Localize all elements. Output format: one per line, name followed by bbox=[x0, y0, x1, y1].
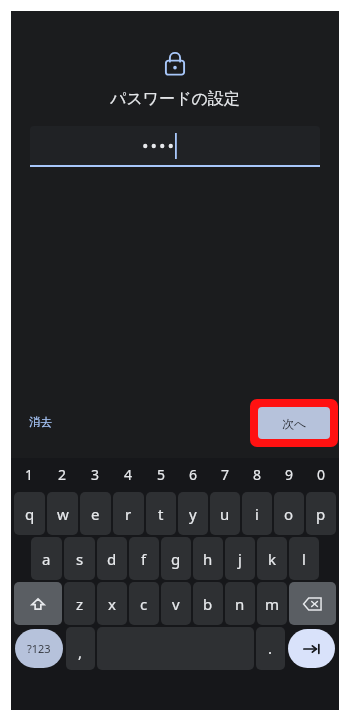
button[interactable]: 消去 bbox=[25, 411, 56, 433]
button[interactable]: 4 bbox=[112, 458, 145, 491]
button[interactable]: t bbox=[146, 492, 176, 535]
button[interactable]: m bbox=[257, 582, 287, 625]
button[interactable]: 8 bbox=[241, 458, 273, 491]
staticText: j bbox=[238, 549, 242, 569]
button[interactable]: Enter bbox=[288, 629, 335, 668]
staticText: w bbox=[57, 504, 69, 524]
button[interactable]: p bbox=[306, 492, 336, 535]
button[interactable]: 7 bbox=[209, 458, 241, 491]
staticText: g bbox=[171, 549, 181, 569]
button[interactable]: e bbox=[80, 492, 111, 535]
staticText: 3 bbox=[91, 465, 100, 484]
staticText: 1 bbox=[25, 465, 34, 484]
staticText: 消去 bbox=[29, 415, 52, 429]
button[interactable]: s bbox=[64, 537, 95, 580]
button[interactable]: 1 bbox=[13, 458, 46, 491]
staticText: z bbox=[76, 594, 84, 614]
staticText: n bbox=[235, 594, 245, 614]
staticText: r bbox=[125, 504, 132, 524]
button[interactable]: j bbox=[225, 537, 255, 580]
staticText: 4 bbox=[124, 465, 133, 484]
staticText: , bbox=[78, 642, 83, 662]
staticText: . bbox=[268, 638, 273, 658]
button[interactable]: h bbox=[193, 537, 223, 580]
staticText: s bbox=[76, 549, 84, 569]
staticText: k bbox=[268, 549, 277, 569]
button[interactable]: 次へ bbox=[258, 407, 330, 439]
staticText: t bbox=[158, 504, 164, 524]
staticText: d bbox=[107, 549, 117, 569]
staticText: m bbox=[265, 594, 280, 614]
button[interactable]: u bbox=[210, 492, 240, 535]
button[interactable]: d bbox=[97, 537, 127, 580]
staticText: 6 bbox=[189, 465, 198, 484]
button[interactable]: k bbox=[257, 537, 287, 580]
button[interactable]: 5 bbox=[145, 458, 177, 491]
button[interactable]: b bbox=[193, 582, 223, 625]
button[interactable]: r bbox=[113, 492, 144, 535]
button[interactable]: z bbox=[64, 582, 95, 625]
staticText: q bbox=[25, 504, 35, 524]
staticText: a bbox=[42, 549, 51, 569]
button[interactable]: 9 bbox=[273, 458, 305, 491]
button[interactable]: y bbox=[178, 492, 208, 535]
button[interactable]: 2 bbox=[46, 458, 79, 491]
staticText: b bbox=[203, 594, 213, 614]
button[interactable]: 0 bbox=[305, 458, 337, 491]
staticText: v bbox=[172, 594, 180, 614]
staticText: 次へ bbox=[282, 416, 307, 431]
button[interactable]: g bbox=[161, 537, 191, 580]
staticText: f bbox=[141, 549, 147, 569]
button[interactable]: . bbox=[256, 627, 285, 670]
staticText: 0 bbox=[317, 465, 326, 484]
staticText: h bbox=[203, 549, 213, 569]
button[interactable]: f bbox=[129, 537, 159, 580]
staticText: l bbox=[302, 549, 306, 569]
staticText: 8 bbox=[253, 465, 262, 484]
button[interactable]: w bbox=[47, 492, 78, 535]
button[interactable]: c bbox=[129, 582, 159, 625]
staticText: p bbox=[316, 504, 326, 524]
button[interactable]: x bbox=[97, 582, 127, 625]
button[interactable]: , bbox=[66, 627, 95, 670]
button[interactable]: Backspace bbox=[289, 582, 336, 625]
staticText: 7 bbox=[221, 465, 230, 484]
button[interactable]: o bbox=[274, 492, 304, 535]
button[interactable]: a bbox=[31, 537, 62, 580]
staticText: パスワードの設定 bbox=[11, 89, 339, 109]
button[interactable]: 3 bbox=[79, 458, 112, 491]
button[interactable]: q bbox=[14, 492, 45, 535]
button[interactable]: n bbox=[225, 582, 255, 625]
button[interactable]: Shift bbox=[14, 582, 62, 625]
button[interactable]: i bbox=[242, 492, 272, 535]
staticText: o bbox=[284, 504, 294, 524]
button[interactable]: l bbox=[289, 537, 319, 580]
button[interactable]: 6 bbox=[177, 458, 209, 491]
button[interactable] bbox=[30, 126, 320, 167]
staticText: 9 bbox=[285, 465, 294, 484]
staticText: ?123 bbox=[27, 641, 51, 656]
button[interactable]: v bbox=[161, 582, 191, 625]
staticText: c bbox=[140, 594, 148, 614]
staticText: 2 bbox=[58, 465, 67, 484]
staticText: y bbox=[189, 504, 197, 524]
staticText: x bbox=[108, 594, 116, 614]
staticText: 5 bbox=[157, 465, 166, 484]
staticText: e bbox=[91, 504, 100, 524]
button[interactable]: ?123 bbox=[15, 629, 63, 668]
staticText: u bbox=[220, 504, 230, 524]
staticText: i bbox=[255, 504, 259, 524]
